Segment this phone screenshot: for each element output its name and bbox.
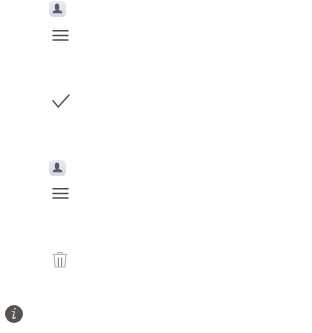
button[interactable]: Done [53, 95, 69, 107]
button[interactable]: Info [5, 305, 23, 323]
button[interactable]: Profile [49, 1, 66, 17]
button[interactable]: Delete [53, 252, 67, 267]
button[interactable]: Menu [53, 30, 68, 41]
button[interactable]: Menu [53, 188, 68, 199]
button[interactable]: Profile [49, 160, 66, 176]
